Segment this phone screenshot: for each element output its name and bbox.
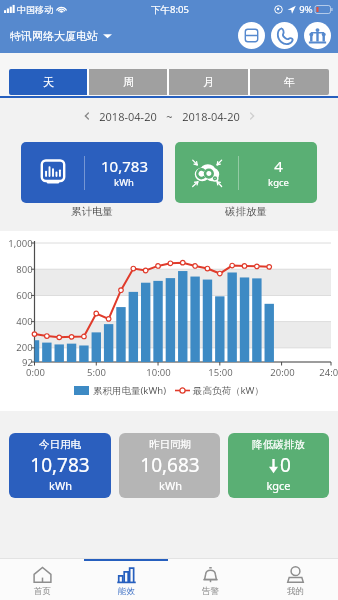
button[interactable]: 昨日同期	[119, 433, 220, 498]
staticText: 能效	[118, 586, 135, 597]
button[interactable]: 降低碳排放	[228, 433, 329, 498]
staticText: 周	[123, 75, 134, 89]
staticText: kWh	[114, 176, 134, 189]
staticText: 10,783	[30, 452, 90, 478]
staticText: 4	[274, 156, 283, 176]
staticText: 1,000	[8, 237, 33, 250]
staticText: kWh	[159, 478, 182, 493]
staticText: 下午8:05	[151, 3, 189, 16]
staticText: 9%	[299, 3, 313, 16]
staticText: 20:00	[270, 366, 295, 379]
button[interactable]: 首页	[0, 559, 84, 600]
staticText: kgce	[266, 478, 291, 493]
button[interactable]: Group	[304, 22, 331, 49]
staticText: 我的	[287, 586, 304, 597]
staticText: 92	[22, 356, 33, 369]
staticText: 5:00	[87, 366, 106, 379]
staticText: 15:00	[208, 366, 233, 379]
staticText: 24:00	[319, 366, 338, 379]
staticText: 200	[16, 341, 33, 354]
staticText: kWh	[49, 478, 72, 493]
staticText: 0:00	[26, 366, 45, 379]
staticText: 昨日同期	[149, 438, 191, 451]
button[interactable]: 特讯网络大厦电站	[10, 29, 112, 43]
staticText: 10:00	[146, 366, 171, 379]
staticText: 降低碳排放	[252, 438, 305, 451]
staticText: 累积用电量(kWh)	[93, 384, 166, 397]
staticText: 今日用电	[39, 438, 81, 451]
button[interactable]: 周	[89, 69, 167, 95]
button[interactable]: Previous date	[79, 108, 95, 124]
staticText: 首页	[34, 586, 51, 597]
button[interactable]: 能效	[84, 559, 168, 600]
staticText: 特讯网络大厦电站	[10, 29, 98, 43]
staticText: 600	[16, 289, 33, 302]
staticText: 800	[16, 263, 33, 276]
button[interactable]: Next date	[244, 108, 260, 124]
button[interactable]: 天	[9, 69, 87, 95]
staticText: 天	[43, 75, 54, 89]
staticText: 累计电量	[71, 205, 113, 218]
staticText: 告警	[202, 586, 219, 597]
staticText: 年	[284, 75, 295, 89]
staticText: 2018-04-20	[99, 109, 157, 124]
button[interactable]: 告警	[168, 559, 253, 600]
button[interactable]: 今日用电	[9, 433, 111, 498]
button[interactable]: 10,783	[21, 142, 163, 203]
button[interactable]: 我的	[253, 559, 338, 600]
staticText: 400	[16, 315, 33, 328]
button[interactable]: 月	[169, 69, 248, 95]
staticText: 中国移动	[17, 4, 53, 15]
staticText: 0	[280, 452, 291, 478]
staticText: 最高负荷（kW）	[193, 384, 264, 397]
button[interactable]: Call	[271, 22, 298, 49]
staticText: 10,783	[101, 156, 148, 176]
staticText: 碳排放量	[225, 205, 267, 218]
staticText: ~	[166, 109, 173, 124]
staticText: kgce	[268, 176, 289, 189]
button[interactable]: 4	[175, 142, 317, 203]
staticText: 10,683	[140, 452, 200, 478]
staticText: 2018-04-20	[182, 109, 240, 124]
staticText: 月	[203, 75, 214, 89]
button[interactable]: Devices	[238, 22, 265, 49]
button[interactable]: 年	[250, 69, 329, 95]
